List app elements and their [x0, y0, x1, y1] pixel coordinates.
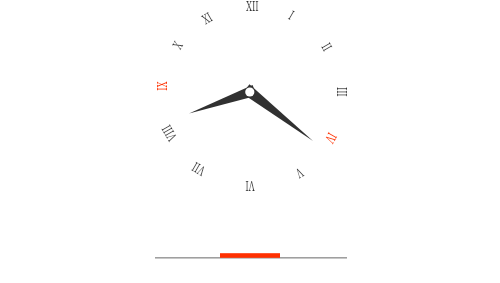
staticText: XII	[246, 0, 259, 15]
staticText: III	[332, 87, 350, 97]
staticText: VII	[188, 158, 209, 180]
staticText: XI	[198, 8, 216, 28]
staticText: IX	[153, 81, 171, 91]
staticText: I	[285, 6, 297, 24]
staticText: II	[317, 40, 336, 54]
staticText: VI	[245, 177, 255, 195]
staticText: VIII	[157, 121, 181, 144]
staticText: IV	[321, 129, 341, 147]
staticText: X	[168, 38, 187, 52]
staticText: V	[292, 164, 307, 182]
button[interactable]: Seek bar	[155, 246, 347, 268]
